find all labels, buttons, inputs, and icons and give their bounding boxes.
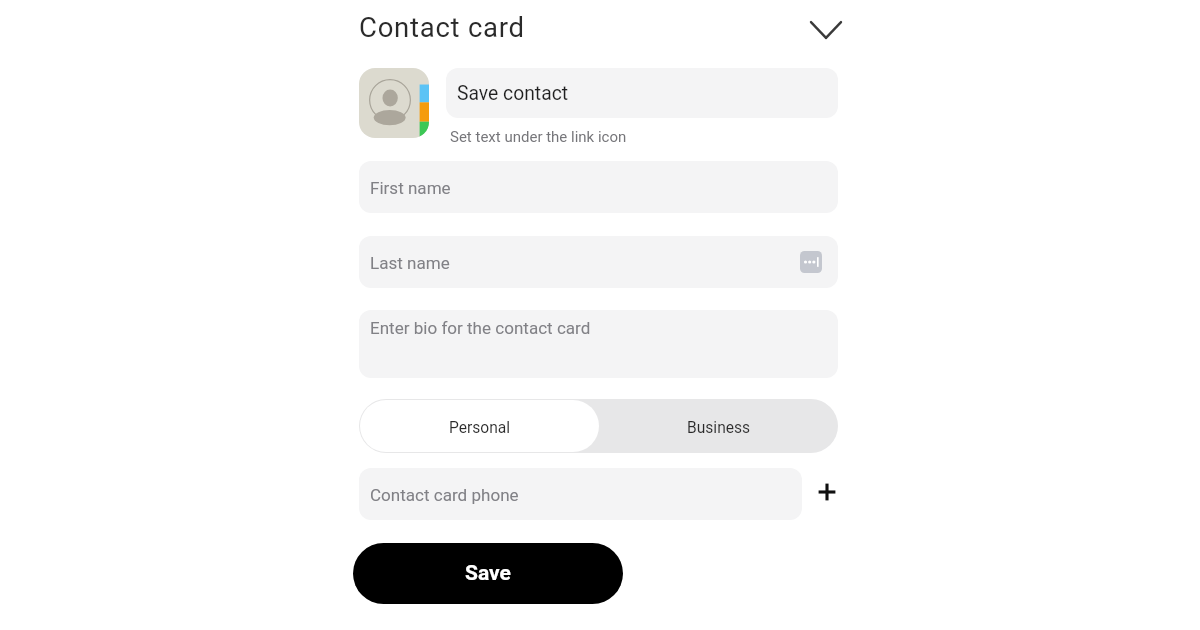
button[interactable]: Save contact [446, 68, 838, 118]
staticText: Last name [370, 253, 450, 273]
button[interactable]: Personal [360, 400, 599, 452]
staticText: Business [687, 419, 751, 437]
button[interactable]: Show password keyboard [800, 251, 822, 273]
button[interactable]: First name [359, 161, 838, 213]
staticText: Contact card phone [370, 485, 519, 505]
staticText: Enter bio for the contact card [370, 318, 591, 338]
button[interactable]: Collapse contact card [803, 7, 849, 53]
staticText: Save [465, 561, 511, 586]
staticText: Save contact [457, 82, 569, 105]
staticText: Personal [449, 419, 511, 437]
button[interactable]: Business [599, 399, 838, 453]
button[interactable]: Add phone number [810, 475, 844, 509]
staticText: Set text under the link icon [450, 128, 627, 146]
button[interactable]: Last name [359, 236, 838, 288]
button[interactable]: Contact card phone [359, 468, 802, 520]
staticText: Contact card [359, 11, 525, 43]
button[interactable]: Enter bio for the contact card [359, 310, 838, 378]
button[interactable]: Contacts app icon [359, 68, 429, 138]
staticText: First name [370, 178, 451, 198]
button[interactable]: Save [353, 543, 623, 604]
